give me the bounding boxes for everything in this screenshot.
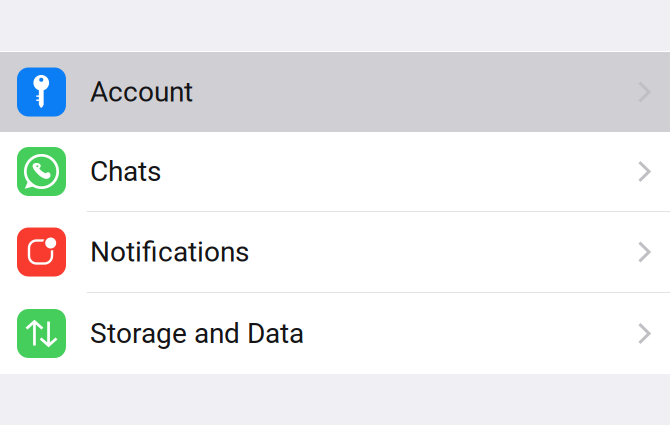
staticText: Notifications	[90, 236, 249, 268]
button[interactable]: Storage and Data	[0, 293, 670, 374]
button[interactable]: Account	[0, 52, 670, 132]
button[interactable]: Chats	[0, 132, 670, 211]
staticText: Chats	[90, 155, 161, 188]
button[interactable]: Notifications	[0, 212, 670, 292]
staticText: Storage and Data	[90, 317, 304, 350]
staticText: Account	[90, 76, 193, 108]
